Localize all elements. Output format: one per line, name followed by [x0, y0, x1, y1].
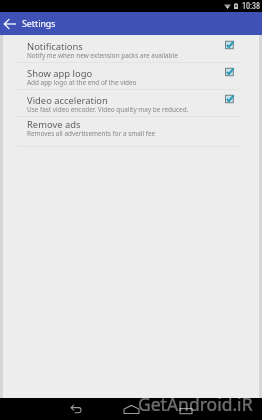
button[interactable]: Notifications — [0, 36, 262, 62]
staticText: Notify me when new extension packs are a… — [27, 51, 178, 60]
button[interactable]: Recent apps — [172, 398, 200, 420]
staticText: Removes all advertisements for a small f… — [27, 129, 156, 138]
staticText: Video acceleration — [27, 94, 108, 107]
button[interactable]: Back — [61, 398, 89, 420]
staticText: GetAndroid.iR — [138, 392, 253, 416]
button[interactable]: Toggle setting — [220, 63, 238, 81]
staticText: Remove ads — [27, 118, 81, 131]
staticText: Add app logo at the end of the video — [27, 78, 137, 87]
staticText: Use fast video encoder. Video quality ma… — [27, 105, 189, 114]
button[interactable]: Toggle setting — [220, 36, 238, 54]
staticText: Settings — [22, 18, 56, 30]
button[interactable]: Toggle setting — [220, 90, 238, 108]
staticText: Show app logo — [27, 67, 93, 80]
staticText: Notifications — [27, 40, 83, 53]
button[interactable]: Home — [117, 398, 145, 420]
button[interactable]: Video acceleration — [0, 90, 262, 116]
button[interactable]: Navigate up — [0, 12, 20, 35]
button[interactable]: Remove ads — [0, 117, 262, 146]
staticText: 10:38 — [242, 1, 261, 11]
button[interactable]: Show app logo — [0, 63, 262, 89]
